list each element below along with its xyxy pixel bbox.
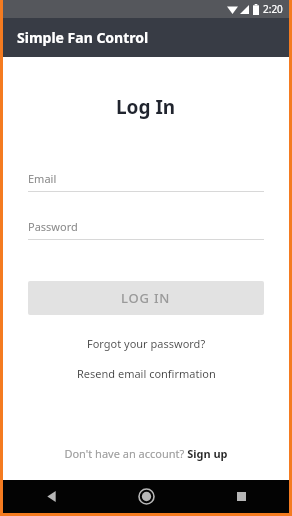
- button[interactable]: Recent apps: [194, 480, 289, 513]
- button[interactable]: Resend email confirmation: [3, 362, 289, 385]
- staticText: Don't have an account? Sign up: [64, 446, 228, 461]
- button[interactable]: Email: [28, 165, 264, 192]
- staticText: 2:20: [263, 2, 283, 16]
- button[interactable]: Back: [3, 480, 99, 513]
- staticText: Resend email confirmation: [77, 366, 216, 381]
- staticText: LOG IN: [121, 289, 171, 307]
- staticText: Simple Fan Control: [17, 28, 149, 47]
- staticText: Forgot your password?: [87, 336, 206, 351]
- staticText: Email: [28, 171, 57, 186]
- button[interactable]: Forgot your password?: [3, 332, 289, 355]
- button[interactable]: Home: [99, 480, 194, 513]
- staticText: Log In: [116, 94, 176, 120]
- button[interactable]: Don't have an account? Sign up: [3, 441, 289, 466]
- button[interactable]: Password: [28, 213, 264, 240]
- staticText: Password: [28, 219, 78, 234]
- button[interactable]: LOG IN: [28, 281, 264, 315]
